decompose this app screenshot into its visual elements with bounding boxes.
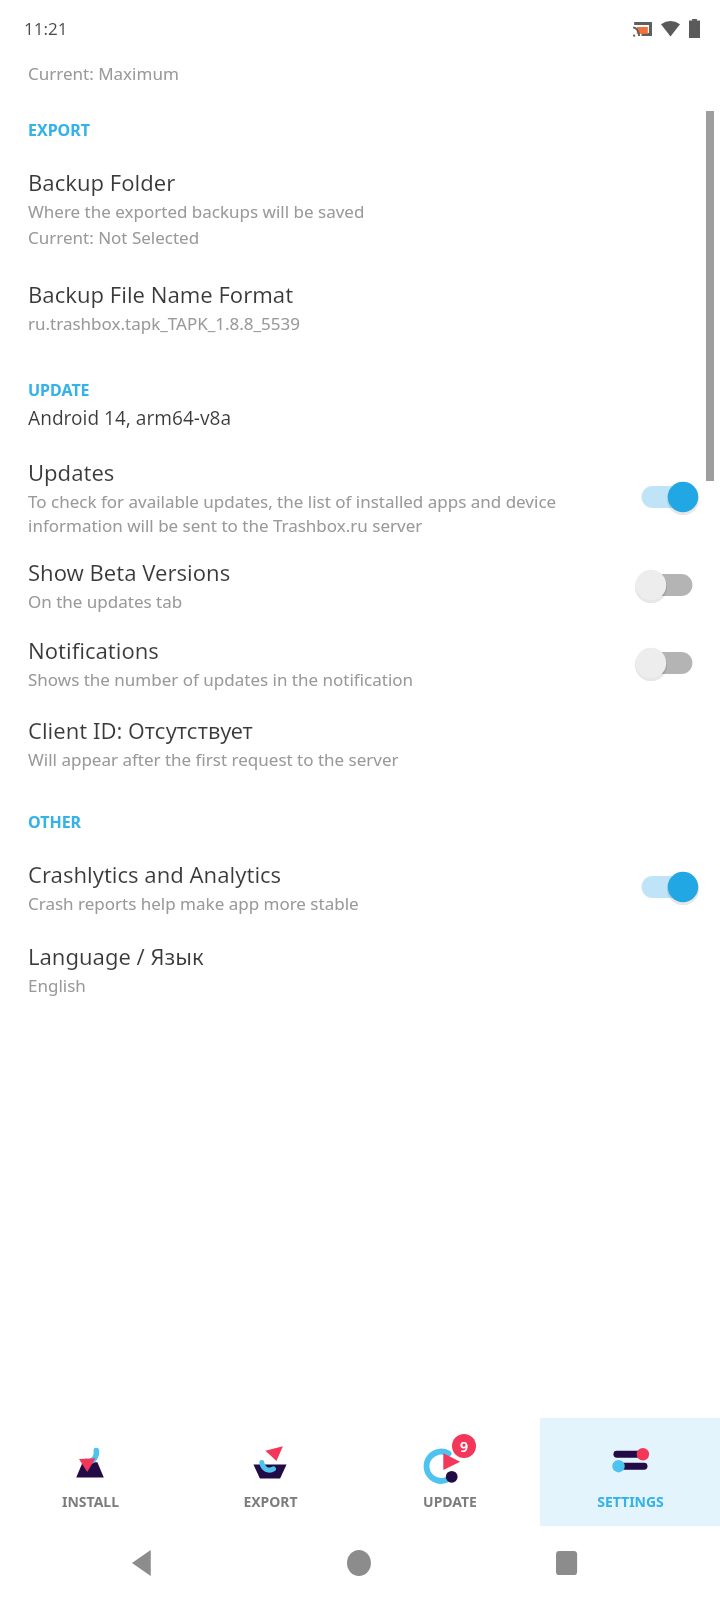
staticText: EXPORT [28,119,91,141]
button[interactable]: Notifications [0,633,720,693]
staticText: 9 [460,1437,469,1456]
button[interactable]: Client ID: Отсутствует [0,713,720,773]
staticText: INSTALL [62,1492,119,1511]
staticText: Crash reports help make app more stable [28,892,359,915]
button[interactable]: Updates [0,455,720,539]
staticText: To check for available updates, the list… [28,490,620,537]
staticText: Will appear after the first request to t… [28,748,399,771]
other: Back [132,1550,158,1576]
other: Settings [607,1437,653,1483]
staticText: Notifications [28,635,159,665]
staticText: Show Beta Versions [28,557,231,587]
button[interactable]: Settings [540,1418,720,1526]
button[interactable]: Install [0,1418,180,1526]
button[interactable]: Update [360,1418,540,1526]
other: Export [247,1437,293,1483]
other: Install [67,1437,113,1483]
staticText: UPDATE [423,1492,477,1511]
staticText: EXPORT [243,1492,298,1511]
button[interactable]: Crashlytics and Analytics [0,857,720,917]
staticText: UPDATE [28,379,90,401]
button[interactable] [636,478,698,516]
other: Recents [556,1551,580,1575]
button[interactable]: Backup Folder [0,165,720,251]
staticText: On the updates tab [28,590,183,613]
staticText: Crashlytics and Analytics [28,859,282,889]
staticText: Where the exported backups will be saved [28,200,365,223]
staticText: 11:21 [24,17,68,40]
staticText: Backup Folder [28,167,176,197]
other: Home [347,1550,373,1576]
staticText: SETTINGS [597,1492,664,1511]
staticText: Current: Not Selected [28,226,200,249]
staticText: ru.trashbox.tapk_TAPK_1.8.8_5539 [28,312,300,335]
staticText: English [28,974,86,997]
staticText: Shows the number of updates in the notif… [28,668,414,691]
button[interactable] [636,868,698,906]
button[interactable]: Show Beta Versions [0,555,720,615]
other: Update [424,1434,476,1486]
staticText: Language / Язык [28,941,204,971]
staticText: Updates [28,457,115,487]
button[interactable]: Backup File Name Format [0,277,720,337]
staticText: Backup File Name Format [28,279,294,309]
button[interactable]: Language / Язык [0,939,720,999]
button[interactable] [636,566,698,604]
staticText: Android 14, arm64-v8a [28,405,232,431]
staticText: Current: Maximum [28,62,179,85]
staticText: OTHER [28,811,82,833]
button[interactable]: Export [180,1418,360,1526]
button[interactable] [636,644,698,682]
staticText: Client ID: Отсутствует [28,715,253,745]
